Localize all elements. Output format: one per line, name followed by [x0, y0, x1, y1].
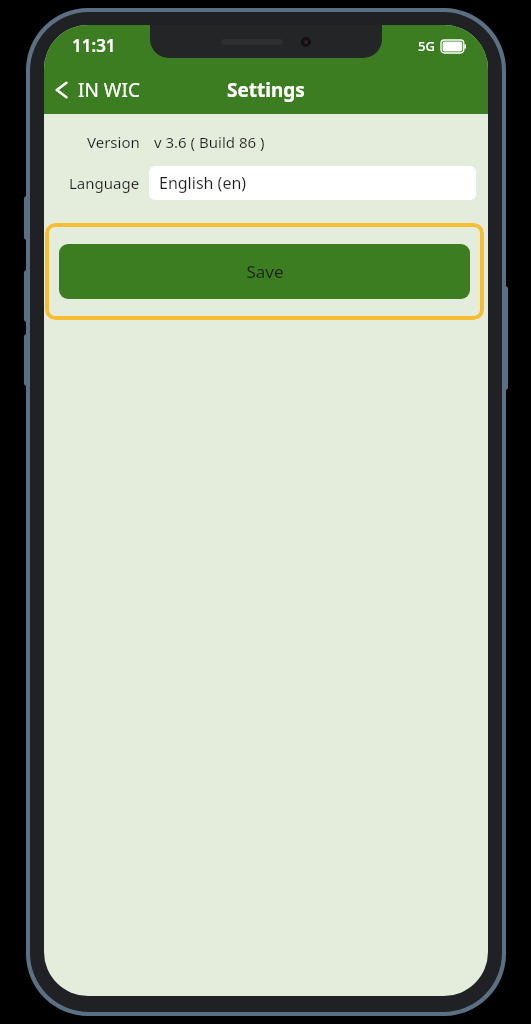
staticText: English (en)	[159, 172, 247, 194]
staticText: IN WIC	[78, 77, 140, 103]
staticText: Save	[246, 260, 284, 283]
staticText: Language	[69, 173, 140, 193]
staticText: 11:31	[72, 34, 116, 57]
button[interactable]: English (en)	[149, 166, 476, 200]
staticText: Settings	[227, 77, 305, 103]
staticText: v 3.6 ( Build 86 )	[154, 132, 265, 152]
staticText: Version	[87, 132, 140, 152]
button[interactable]: IN WIC	[44, 71, 150, 109]
staticText: 5G	[418, 37, 435, 55]
button[interactable]: Save	[59, 244, 470, 299]
